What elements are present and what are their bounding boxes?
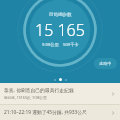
button[interactable]: 目前總步數 xyxy=(35,12,85,48)
button[interactable]: 查看詳細資料 xyxy=(109,90,117,98)
staticText: 15 165 xyxy=(35,19,85,41)
staticText: 目前總步數 xyxy=(49,12,72,18)
staticText: 9.98公里 xyxy=(42,42,59,48)
button[interactable]: 查看詳細資料 xyxy=(109,109,117,116)
staticText: 21:10–22:19 運動了45分鐘, 共933公尺 xyxy=(4,109,87,116)
button[interactable]: 走路中 xyxy=(94,58,117,69)
staticText: 新紀錄, 15165步, 9.98公里 xyxy=(4,95,47,100)
staticText: 509千卡 xyxy=(63,42,79,48)
button[interactable]: 恭喜, 你刷造自己的最高行走紀錄 xyxy=(0,83,120,104)
staticText: 恭喜, 你刷造自己的最高行走紀錄 xyxy=(4,87,74,94)
staticText: 走路中 xyxy=(99,61,112,66)
button[interactable]: 21:10–22:19 運動了45分鐘, 共933公尺 xyxy=(0,105,120,120)
